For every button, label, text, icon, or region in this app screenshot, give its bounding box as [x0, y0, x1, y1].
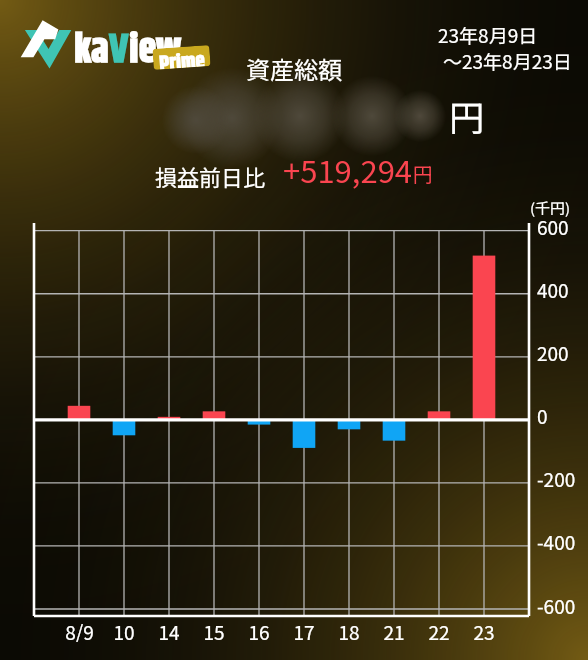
- staticText: ka: [74, 20, 109, 81]
- staticText: 17: [293, 618, 315, 642]
- staticText: -600: [537, 592, 576, 620]
- staticText: 400: [537, 276, 569, 304]
- staticText: V: [109, 20, 129, 81]
- staticText: 損益前日比: [155, 160, 266, 192]
- staticText: 16: [248, 618, 270, 642]
- staticText: 資産総額: [246, 51, 342, 86]
- staticText: 8/9: [65, 618, 94, 642]
- staticText: -200: [537, 465, 576, 493]
- staticText: 21: [383, 618, 405, 642]
- staticText: 円: [449, 90, 485, 141]
- staticText: 23年8月9日: [438, 21, 538, 49]
- staticText: 200: [537, 339, 569, 367]
- staticText: 23: [473, 618, 495, 642]
- staticText: 〜23年8月23日: [443, 47, 572, 75]
- staticText: 22: [428, 618, 450, 642]
- staticText: iew: [129, 20, 181, 81]
- button[interactable]: ka: [74, 20, 181, 81]
- staticText: 円: [413, 159, 433, 188]
- staticText: 14: [158, 618, 180, 642]
- staticText: 600: [537, 213, 569, 241]
- staticText: (千円): [530, 197, 571, 219]
- button[interactable]: Prime: [152, 45, 211, 70]
- staticText: 0: [537, 402, 548, 430]
- staticText: -400: [537, 528, 576, 556]
- staticText: Prime: [158, 45, 206, 70]
- staticText: 18: [338, 618, 360, 642]
- button[interactable]: kaView logo: [16, 16, 76, 76]
- staticText: +519,294: [283, 147, 413, 192]
- staticText: 10: [113, 618, 135, 642]
- staticText: 15: [203, 618, 225, 642]
